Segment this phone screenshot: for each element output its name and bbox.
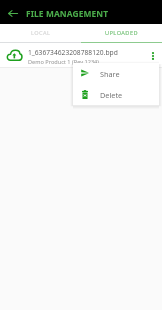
button[interactable]: More options	[145, 48, 161, 64]
staticText: Demo Product 1 (Rev 1234)	[28, 58, 99, 66]
staticText: Delete	[100, 90, 123, 100]
button[interactable]: Delete	[73, 84, 159, 105]
staticText: Share	[100, 69, 120, 79]
button[interactable]: UPLOADED	[81, 24, 162, 42]
staticText: 1_636734623208788120.bpd	[28, 48, 118, 57]
staticText: FILE MANAGEMENT	[26, 8, 109, 19]
staticText: LOCAL	[31, 29, 51, 37]
button[interactable]: 1_636734623208788120.bpd	[0, 43, 162, 67]
staticText: UPLOADED	[105, 29, 139, 37]
button[interactable]: Share	[73, 63, 159, 84]
button[interactable]: LOCAL	[0, 24, 81, 42]
button[interactable]: Back	[4, 8, 22, 18]
